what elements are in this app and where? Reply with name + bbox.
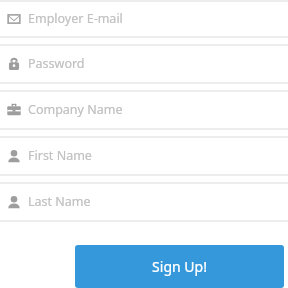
button[interactable]: E-mail bbox=[0, 2, 288, 36]
button[interactable]: First name bbox=[0, 138, 288, 174]
staticText: Sign Up! bbox=[152, 257, 207, 276]
button[interactable]: Sign Up! bbox=[75, 245, 284, 288]
other: E-mail bbox=[7, 12, 21, 26]
staticText: Password bbox=[28, 55, 85, 72]
other: Password bbox=[7, 57, 21, 71]
staticText: First Name bbox=[28, 147, 92, 164]
other: Last name bbox=[7, 195, 21, 209]
button[interactable]: Company bbox=[0, 92, 288, 128]
other: First name bbox=[7, 149, 21, 163]
staticText: Employer E-mail bbox=[28, 10, 123, 27]
button[interactable]: Last name bbox=[0, 184, 288, 220]
staticText: Company Name bbox=[28, 101, 123, 118]
staticText: Last Name bbox=[28, 193, 91, 210]
button[interactable]: Password bbox=[0, 46, 288, 82]
other: Company bbox=[7, 103, 21, 117]
